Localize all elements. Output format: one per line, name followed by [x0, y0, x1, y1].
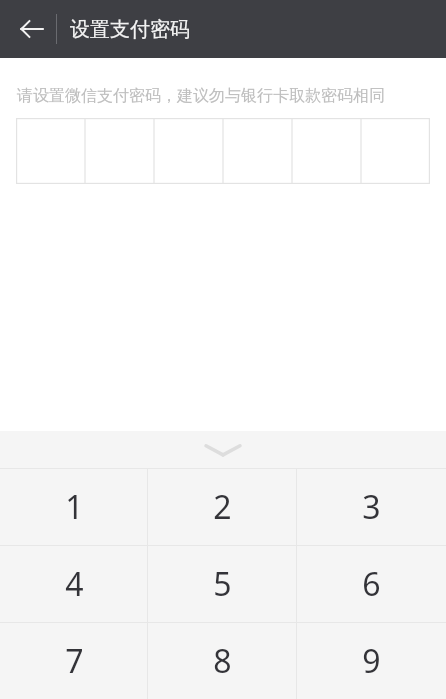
- button[interactable]: Back: [8, 5, 56, 53]
- button[interactable]: [16, 118, 430, 184]
- staticText: 5: [213, 562, 232, 606]
- staticText: 1: [65, 485, 84, 529]
- staticText: 7: [65, 639, 84, 683]
- staticText: 8: [213, 639, 232, 683]
- button[interactable]: 9: [297, 623, 446, 699]
- button[interactable]: 3: [297, 469, 446, 545]
- button[interactable]: 8: [148, 623, 297, 699]
- staticText: 6: [362, 562, 381, 606]
- button[interactable]: 7: [0, 623, 148, 699]
- button[interactable]: 2: [148, 469, 297, 545]
- button[interactable]: 4: [0, 546, 148, 622]
- staticText: 2: [213, 485, 232, 529]
- staticText: 设置支付密码: [70, 17, 190, 42]
- staticText: 9: [362, 639, 381, 683]
- staticText: 请设置微信支付密码，建议勿与银行卡取款密码相同: [17, 86, 424, 106]
- button[interactable]: 6: [297, 546, 446, 622]
- staticText: 4: [65, 562, 84, 606]
- button[interactable]: 5: [148, 546, 297, 622]
- button[interactable]: 1: [0, 469, 148, 545]
- staticText: 3: [362, 485, 381, 529]
